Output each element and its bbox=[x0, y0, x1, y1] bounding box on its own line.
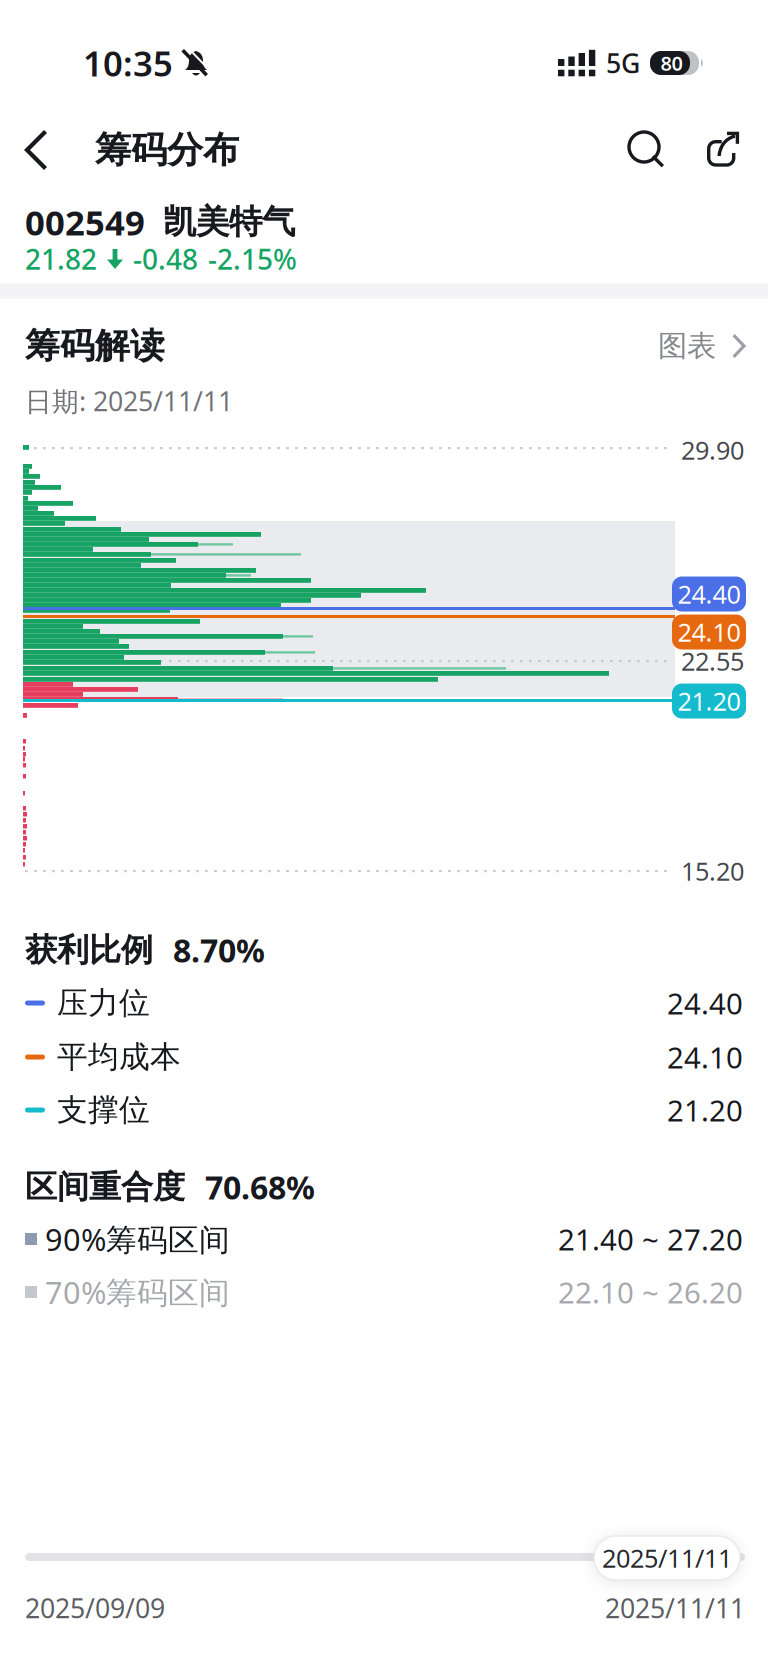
staticText: 压力位 bbox=[57, 984, 150, 1022]
button[interactable]: 搜索 bbox=[628, 131, 665, 169]
staticText: 21.20 bbox=[667, 1090, 743, 1129]
staticText: 22.10 ~ 26.20 bbox=[558, 1272, 743, 1311]
staticText: 002549 bbox=[25, 199, 145, 245]
staticText: 70%筹码区间 bbox=[45, 1272, 230, 1312]
staticText: -0.48 bbox=[133, 240, 198, 278]
staticText: 筹码分布 bbox=[95, 128, 239, 172]
button[interactable]: 2025/11/11 bbox=[594, 1536, 740, 1580]
staticText: 凯美特气 bbox=[163, 201, 295, 242]
staticText: 10:35 bbox=[83, 40, 173, 86]
staticText: 21.20 bbox=[677, 684, 740, 718]
staticText: 平均成本 bbox=[57, 1038, 181, 1076]
staticText: 24.10 bbox=[667, 1037, 743, 1076]
staticText: 21.82 bbox=[25, 240, 97, 278]
staticText: 日期: 2025/11/11 bbox=[25, 383, 233, 419]
staticText: 支撑位 bbox=[57, 1091, 150, 1129]
staticText: 2025/09/09 bbox=[25, 1590, 165, 1626]
staticText: 24.10 bbox=[677, 615, 740, 649]
staticText: 70.68% bbox=[205, 1166, 315, 1208]
staticText: 24.40 bbox=[677, 577, 740, 611]
staticText: 获利比例 bbox=[25, 930, 153, 970]
staticText: 图表 bbox=[658, 328, 716, 364]
staticText: 区间重合度 bbox=[25, 1167, 185, 1207]
staticText: -2.15% bbox=[208, 240, 297, 278]
button[interactable]: 分享 bbox=[707, 132, 742, 168]
staticText: 8.70% bbox=[173, 929, 265, 971]
staticText: 24.40 bbox=[667, 983, 743, 1022]
staticText: 22.55 bbox=[681, 644, 744, 678]
staticText: 21.40 ~ 27.20 bbox=[558, 1219, 743, 1258]
staticText: 2025/11/11 bbox=[602, 1541, 732, 1575]
button[interactable]: 返回 bbox=[22, 130, 50, 170]
staticText: 90%筹码区间 bbox=[45, 1219, 230, 1259]
staticText: 5G bbox=[606, 45, 640, 81]
button[interactable]: 图表 bbox=[658, 328, 745, 364]
staticText: 80 bbox=[660, 50, 682, 76]
staticText: 15.20 bbox=[681, 854, 744, 888]
staticText: 筹码解读 bbox=[25, 325, 165, 367]
staticText: 2025/11/11 bbox=[605, 1590, 745, 1626]
staticText: 29.90 bbox=[681, 433, 744, 467]
